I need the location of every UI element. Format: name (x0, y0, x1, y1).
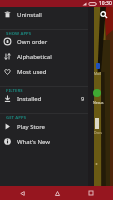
staticText: Play Store (17, 123, 45, 131)
staticText: Mail (94, 71, 101, 76)
button[interactable]: Uninstall (0, 7, 88, 22)
button[interactable]: Back (9, 186, 35, 200)
button[interactable]: Recent apps (78, 186, 104, 200)
staticText: Own order (17, 38, 48, 46)
button[interactable]: Most used (0, 64, 88, 79)
staticText: What's New (17, 138, 51, 146)
button[interactable]: Alphabetical (0, 49, 88, 64)
staticText: 10:30 (99, 0, 112, 7)
staticText: Uninstall (17, 11, 42, 19)
button[interactable]: App (96, 63, 100, 69)
button[interactable]: App (93, 89, 101, 97)
button[interactable]: What's New (0, 134, 88, 149)
staticText: Nexus (93, 100, 104, 105)
button[interactable]: Play Store (0, 119, 88, 134)
staticText: Docs (94, 130, 102, 135)
staticText: Alphabetical (17, 53, 52, 61)
staticText: 9 (81, 95, 85, 102)
staticText: Most used (17, 68, 47, 76)
button[interactable]: Installed (0, 91, 88, 106)
staticText: Installed (17, 95, 42, 103)
button[interactable]: Search (99, 10, 108, 19)
staticText: SHOW APPS (6, 31, 32, 37)
button[interactable]: Home (44, 186, 70, 200)
staticText: FILTERS (6, 88, 23, 94)
staticText: GET APPS (6, 115, 27, 121)
button[interactable]: Own order (0, 34, 88, 49)
